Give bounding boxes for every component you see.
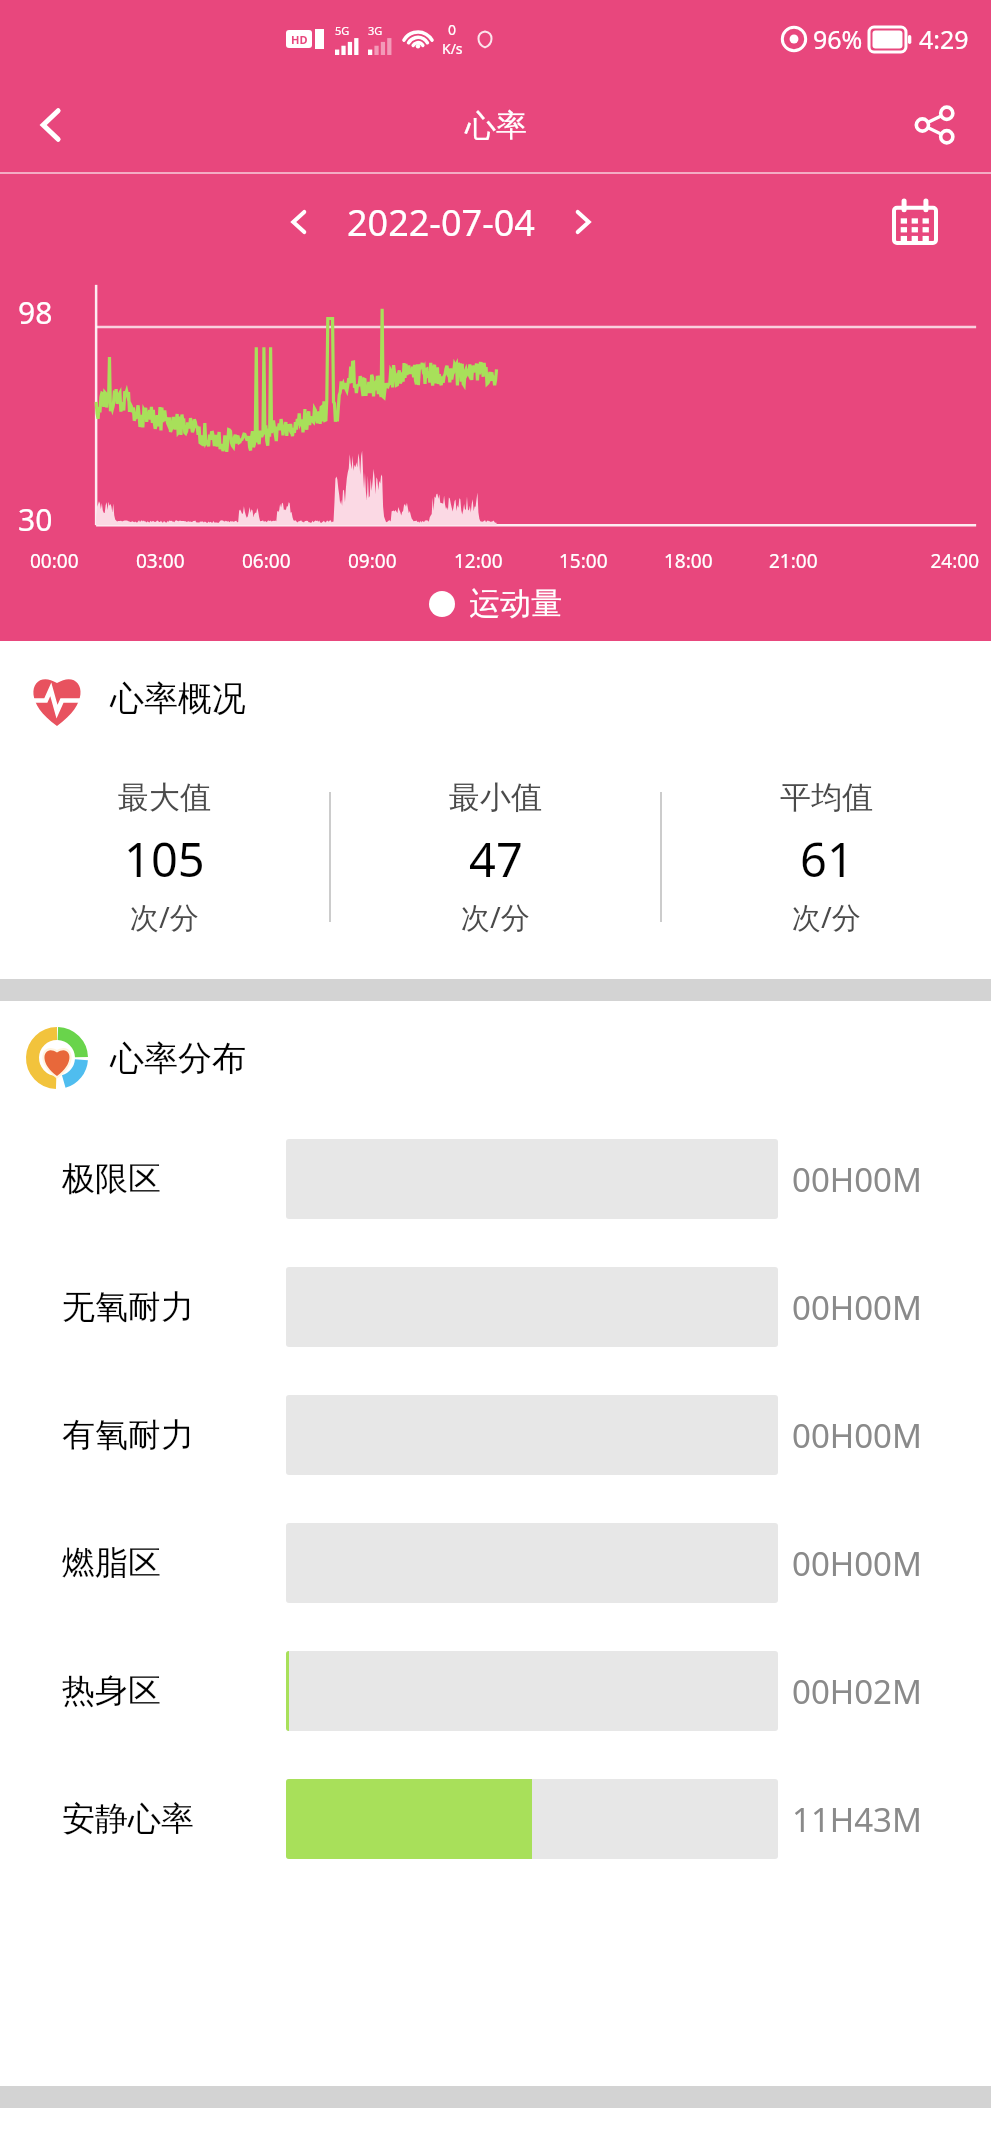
button[interactable]: 平均值 — [662, 778, 991, 937]
button[interactable]: 心率概况 — [26, 667, 991, 729]
staticText: 96% — [813, 22, 863, 56]
staticText: 极限区 — [62, 1158, 161, 1200]
staticText: 00H00M — [792, 1541, 922, 1586]
button[interactable]: 热身区 — [0, 1627, 991, 1755]
staticText: 00H00M — [792, 1157, 922, 1202]
staticText: 运动量 — [469, 584, 562, 623]
staticText: 30 — [18, 499, 53, 540]
button[interactable]: Calendar — [883, 190, 947, 254]
staticText: 00:00 — [30, 548, 136, 574]
staticText: 2022-07-04 — [347, 198, 535, 247]
staticText: 最小值 — [449, 778, 542, 817]
staticText: 61 — [800, 827, 854, 891]
button[interactable]: Previous day — [269, 192, 329, 252]
button[interactable]: 心率分布 — [26, 1027, 991, 1089]
staticText: 心率分布 — [110, 1037, 246, 1080]
staticText: 平均值 — [780, 778, 873, 817]
staticText: 安静心率 — [62, 1798, 194, 1840]
staticText: 燃脂区 — [62, 1542, 161, 1584]
staticText: 次/分 — [130, 897, 199, 937]
staticText: 06:00 — [242, 548, 348, 574]
button[interactable]: Share — [897, 87, 973, 163]
staticText: 09:00 — [348, 548, 454, 574]
staticText: 无氧耐力 — [62, 1286, 194, 1328]
button[interactable]: 安静心率 — [0, 1755, 991, 1883]
staticText: 24:00 — [874, 548, 979, 574]
staticText: 00H02M — [792, 1669, 922, 1714]
staticText: 00H00M — [792, 1285, 922, 1330]
button[interactable]: 无氧耐力 — [0, 1243, 991, 1371]
staticText: 03:00 — [136, 548, 242, 574]
staticText: 21:00 — [769, 548, 874, 574]
staticText: K/s — [442, 39, 463, 58]
staticText: 47 — [469, 827, 523, 891]
button[interactable]: Next day — [553, 192, 613, 252]
staticText: 4:29 — [919, 22, 969, 56]
staticText: 5G — [335, 23, 350, 38]
button[interactable]: 有氧耐力 — [0, 1371, 991, 1499]
staticText: 有氧耐力 — [62, 1414, 194, 1456]
staticText: 热身区 — [62, 1670, 161, 1712]
staticText: 00H00M — [792, 1413, 922, 1458]
staticText: 11H43M — [792, 1797, 922, 1842]
button[interactable]: Back — [14, 87, 90, 163]
staticText: 次/分 — [461, 897, 530, 937]
staticText: 心率 — [465, 106, 527, 145]
staticText: 15:00 — [559, 548, 664, 574]
staticText: 次/分 — [792, 897, 861, 937]
staticText: 3G — [368, 23, 383, 38]
staticText: 98 — [18, 292, 53, 333]
staticText: 12:00 — [454, 548, 559, 574]
button[interactable]: 极限区 — [0, 1115, 991, 1243]
staticText: 最大值 — [118, 778, 211, 817]
staticText: 18:00 — [664, 548, 769, 574]
staticText: 0 — [448, 20, 457, 39]
staticText: 105 — [124, 827, 205, 891]
staticText: 心率概况 — [110, 677, 246, 720]
staticText: HD — [291, 32, 308, 47]
button[interactable]: 燃脂区 — [0, 1499, 991, 1627]
button[interactable]: 最大值 — [0, 778, 329, 937]
button[interactable]: 最小值 — [331, 778, 660, 937]
